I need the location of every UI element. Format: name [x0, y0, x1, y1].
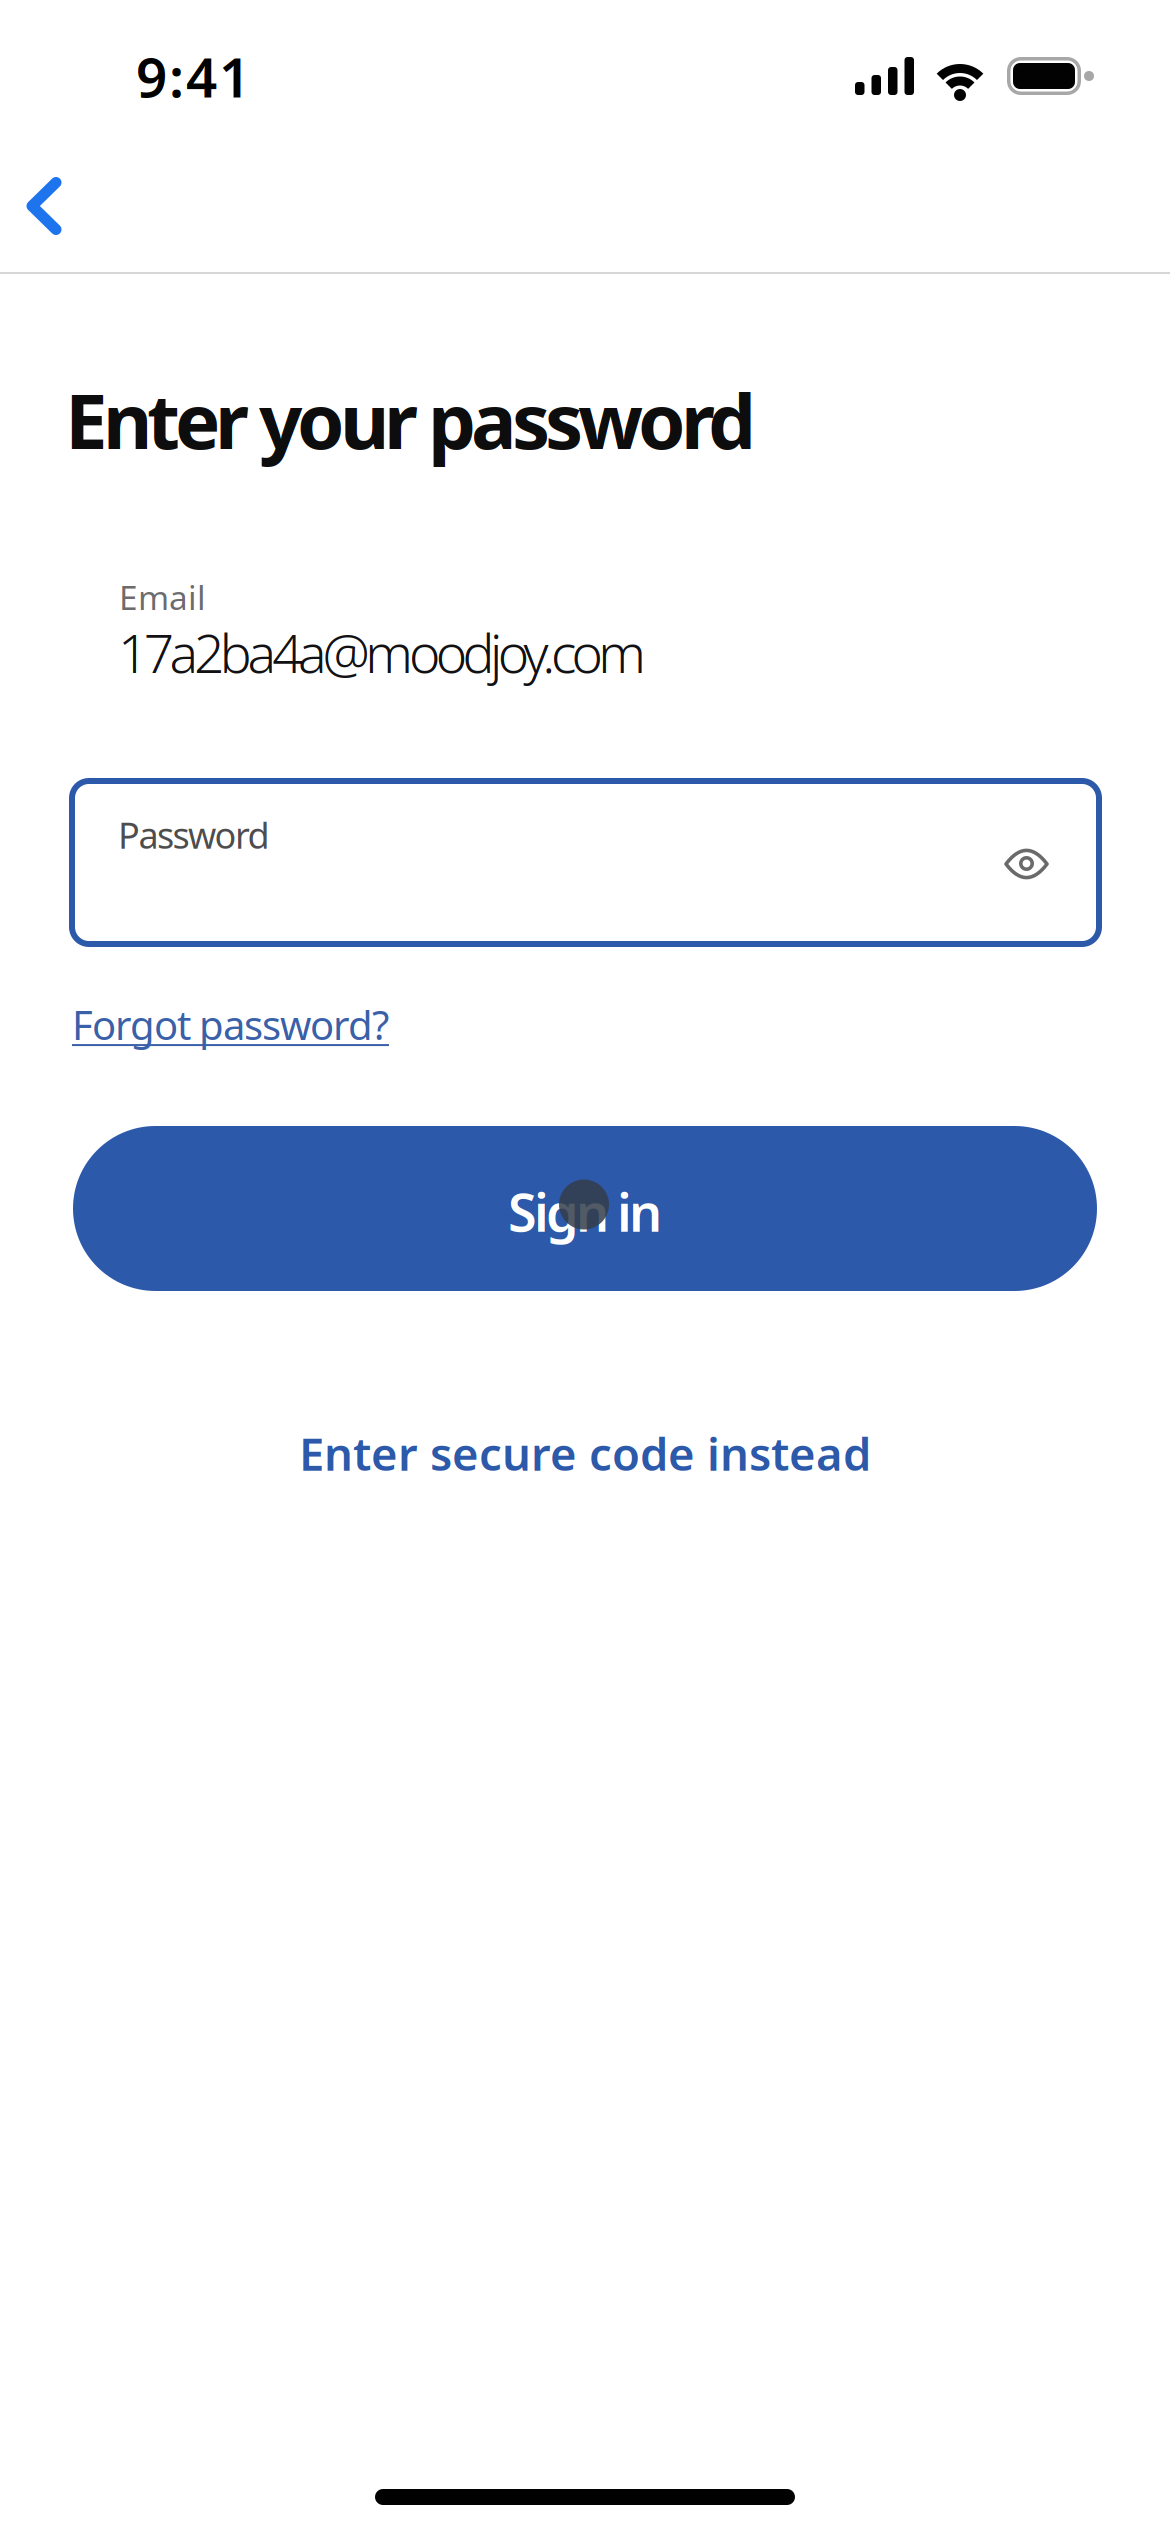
staticText: Sign in	[508, 1177, 662, 1246]
button[interactable]: Forgot password?	[72, 998, 389, 1051]
button[interactable]: Enter secure code instead	[0, 1423, 1170, 1483]
button[interactable]: Back	[16, 170, 72, 241]
staticText: 9:41	[136, 40, 250, 113]
staticText: 17a2ba4a@moodjoy.com	[118, 617, 646, 688]
staticText: Enter secure code instead	[299, 1423, 871, 1483]
staticText: Email	[119, 575, 206, 619]
button[interactable]: Show password	[986, 828, 1067, 900]
staticText: Forgot password?	[72, 998, 389, 1051]
staticText: Password	[118, 811, 269, 859]
button[interactable]: Sign in	[73, 1126, 1097, 1291]
staticText: Enter your password	[65, 369, 756, 470]
